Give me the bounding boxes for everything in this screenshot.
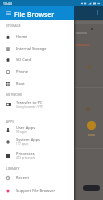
button[interactable]: User Apps: [0, 124, 74, 135]
staticText: APPS: [6, 119, 14, 123]
button[interactable]: Phone: [0, 66, 74, 77]
staticText: Root: [16, 81, 25, 86]
staticText: 99 apps: [16, 130, 27, 134]
staticText: NETWORK: [6, 92, 23, 96]
staticText: 177 apps: [16, 142, 29, 146]
staticText: Using browser / FTP: [16, 105, 44, 109]
staticText: System Apps: [16, 137, 41, 142]
button[interactable]: Home: [0, 31, 74, 42]
button[interactable]: Open navigation drawer: [2, 6, 14, 20]
staticText: Recent: [16, 175, 29, 180]
button[interactable]: Support File Browser: [0, 185, 74, 196]
staticText: Support File Browser: [16, 188, 56, 193]
staticText: STORAGE: [6, 23, 21, 27]
staticText: Phone: [16, 69, 29, 74]
button[interactable]: SD Card: [0, 54, 74, 65]
staticText: Processes: [16, 151, 35, 156]
button[interactable]: System Apps: [0, 136, 74, 147]
staticText: 473 processes: [16, 156, 36, 160]
staticText: Home: [16, 34, 28, 39]
button[interactable]: Transfer to PC: [0, 99, 74, 110]
button[interactable]: Root: [0, 78, 74, 89]
staticText: File Browser: [14, 10, 55, 19]
staticText: LIBRARY: [6, 166, 20, 170]
button[interactable]: Recent: [0, 172, 74, 183]
staticText: 10:44: [3, 1, 12, 6]
staticText: Internal Storage: [16, 46, 47, 51]
staticText: Transfer to PC: [16, 100, 43, 105]
button[interactable]: Processes: [0, 150, 74, 161]
staticText: SD Card: [16, 57, 31, 62]
button[interactable]: Internal Storage: [0, 43, 74, 54]
staticText: User Apps: [16, 125, 36, 130]
